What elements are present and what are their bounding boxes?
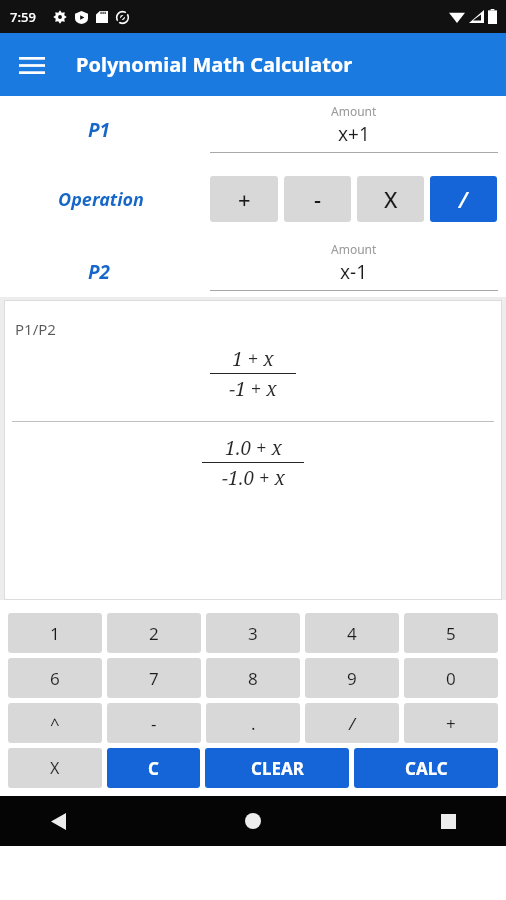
staticText: -	[151, 712, 157, 735]
staticText: 4	[347, 622, 357, 645]
staticText: P2	[88, 259, 111, 285]
staticText: 5	[446, 622, 456, 645]
button[interactable]: .	[206, 703, 300, 743]
staticText: P1/P2	[15, 319, 56, 339]
button[interactable]: Open navigation menu	[12, 45, 52, 85]
staticText: 1	[50, 622, 60, 645]
staticText: +	[446, 712, 456, 735]
button[interactable]: 1	[8, 613, 102, 653]
staticText: 9	[347, 667, 357, 690]
staticText: x+1	[338, 121, 370, 147]
button[interactable]: CLEAR	[205, 748, 349, 788]
button[interactable]: +	[404, 703, 498, 743]
button[interactable]: 2	[107, 613, 201, 653]
button[interactable]: X	[8, 748, 102, 788]
button[interactable]: 9	[305, 658, 399, 698]
button[interactable]: CALC	[354, 748, 498, 788]
button[interactable]: 8	[206, 658, 300, 698]
staticText: X	[50, 757, 60, 779]
staticText: 0	[446, 667, 456, 690]
button[interactable]: 0	[404, 658, 498, 698]
staticText: .	[251, 712, 256, 735]
staticText: Polynomial Math Calculator	[76, 51, 353, 78]
staticText: P1	[88, 117, 111, 143]
button[interactable]: /	[305, 703, 399, 743]
button[interactable]: /	[430, 176, 497, 222]
staticText: -	[314, 184, 322, 214]
button[interactable]: -	[284, 176, 351, 222]
staticText: 7	[149, 667, 159, 690]
staticText: 1 + x	[232, 346, 274, 372]
staticText: 3	[248, 622, 258, 645]
staticText: −1 + x	[229, 376, 277, 402]
button[interactable]: 6	[8, 658, 102, 698]
button[interactable]: 4	[305, 613, 399, 653]
button[interactable]: 3	[206, 613, 300, 653]
staticText: 7:59	[10, 8, 36, 26]
button[interactable]: X	[357, 176, 424, 222]
button[interactable]: ^	[8, 703, 102, 743]
staticText: −1.0 + x	[222, 465, 285, 491]
button[interactable]: +	[210, 176, 278, 222]
button[interactable]: Back	[36, 799, 80, 843]
button[interactable]: Home	[231, 799, 275, 843]
button[interactable]: -	[107, 703, 201, 743]
staticText: ^	[50, 712, 60, 735]
staticText: 6	[50, 667, 60, 690]
staticText: Amount	[331, 103, 377, 119]
staticText: CALC	[405, 757, 448, 780]
button[interactable]: Amount	[210, 241, 498, 291]
staticText: CLEAR	[251, 757, 304, 780]
staticText: /	[349, 712, 356, 735]
staticText: Operation	[58, 187, 144, 212]
button[interactable]: Recent apps	[426, 799, 470, 843]
button[interactable]: 5	[404, 613, 498, 653]
staticText: +	[238, 184, 251, 214]
button[interactable]: C	[107, 748, 200, 788]
staticText: /	[459, 184, 468, 214]
staticText: X	[384, 184, 398, 214]
button[interactable]: 7	[107, 658, 201, 698]
staticText: Amount	[331, 241, 377, 257]
staticText: 8	[248, 667, 258, 690]
staticText: C	[148, 757, 159, 780]
staticText: x-1	[340, 259, 368, 285]
button[interactable]: Amount	[210, 103, 498, 153]
staticText: 2	[149, 622, 159, 645]
staticText: 1.0 + x	[225, 435, 282, 461]
